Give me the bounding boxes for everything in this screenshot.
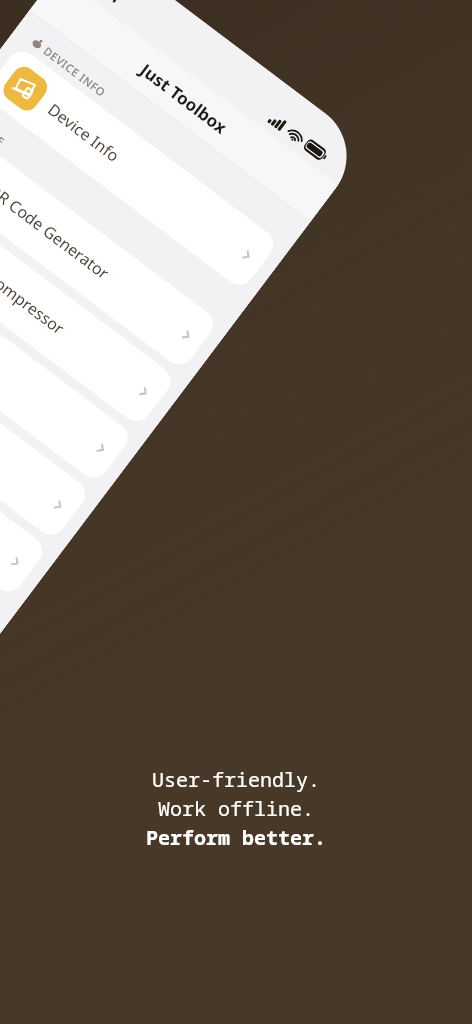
button[interactable]: Image Compressor [0,182,177,427]
staticText: DEVICE INFO [41,43,109,100]
button[interactable]: QR Code Generator [0,125,219,371]
staticText: Unit Converter [0,348,60,510]
staticText: Device Info [43,98,248,260]
staticText: Color Picker [0,292,103,454]
button[interactable]: Unit Converter [0,295,91,541]
staticText: IMAGE [0,114,9,149]
staticText: Text Tools [0,405,17,567]
button[interactable]: Device Info [0,45,280,291]
staticText: User-friendly. [152,766,320,793]
staticText: Work offline. [158,795,314,822]
button[interactable]: Random Picker [0,409,6,654]
staticText: 9:41 [88,0,127,8]
staticText: Image Compressor [0,235,145,397]
staticText: Perform better. [146,824,326,851]
staticText: QR Code Generator [0,178,188,340]
staticText: Just Toolbox [136,58,232,139]
button[interactable]: Color Picker [0,238,134,484]
button[interactable]: Text Tools [0,352,48,598]
